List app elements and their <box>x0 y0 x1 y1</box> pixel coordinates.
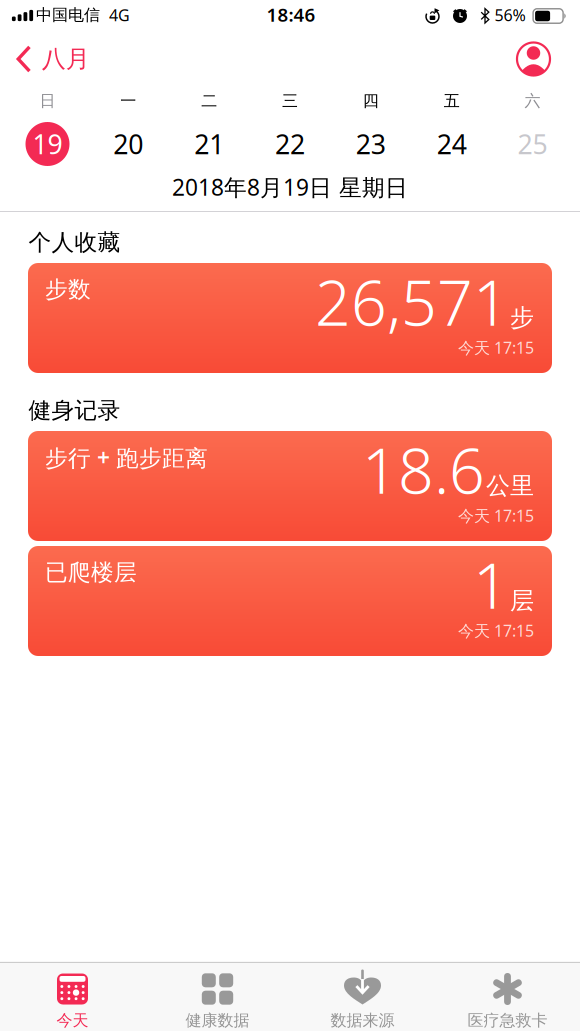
staticText: 24 <box>437 126 467 162</box>
button[interactable]: 五 <box>411 79 492 179</box>
staticText: 18:46 <box>266 2 315 27</box>
button[interactable]: 返回八月 <box>16 44 90 74</box>
button[interactable]: 六 <box>492 79 573 179</box>
staticText: 今天 17:15 <box>458 620 534 641</box>
staticText: 公里 <box>486 471 534 501</box>
button[interactable]: 个人资料 <box>517 42 550 75</box>
button[interactable]: 四 <box>330 79 411 179</box>
button[interactable]: 今天 <box>0 962 145 1031</box>
button[interactable]: 三 <box>249 79 330 179</box>
button[interactable]: 二 <box>169 79 250 179</box>
staticText: 六 <box>524 91 540 111</box>
staticText: 4G <box>109 4 130 26</box>
staticText: 医疗急救卡 <box>467 1011 547 1030</box>
staticText: 个人收藏 <box>28 229 120 256</box>
staticText: 步数 <box>45 276 91 303</box>
staticText: 健康数据 <box>185 1011 249 1030</box>
staticText: 二 <box>201 91 217 111</box>
staticText: 八月 <box>42 44 90 74</box>
staticText: 26,571 <box>315 260 509 343</box>
staticText: 22 <box>275 126 305 162</box>
staticText: 21 <box>194 126 224 162</box>
staticText: 日 <box>39 91 55 111</box>
staticText: 五 <box>444 91 460 111</box>
button[interactable]: 已爬楼层 <box>28 546 552 656</box>
staticText: 20 <box>113 126 143 162</box>
staticText: 56% <box>494 4 525 26</box>
button[interactable]: 健康数据 <box>145 962 290 1031</box>
staticText: 18.6 <box>362 428 485 511</box>
staticText: 25 <box>517 126 547 162</box>
staticText: 三 <box>282 91 298 111</box>
button[interactable]: 医疗急救卡 <box>435 962 580 1031</box>
staticText: 今天 17:15 <box>458 505 534 526</box>
staticText: 数据来源 <box>330 1011 394 1030</box>
staticText: 健身记录 <box>28 397 120 424</box>
staticText: 步行 + 跑步距离 <box>45 442 208 472</box>
staticText: 四 <box>363 91 379 111</box>
staticText: 1 <box>473 543 509 626</box>
staticText: 一 <box>120 91 136 111</box>
staticText: 步 <box>510 303 534 333</box>
staticText: 19 <box>32 126 62 162</box>
button[interactable]: 步行 + 跑步距离 <box>28 431 552 541</box>
button[interactable]: 日 <box>7 79 88 179</box>
button[interactable]: 步数 <box>28 263 552 373</box>
staticText: 今天 17:15 <box>458 337 534 358</box>
staticText: 今天 <box>56 1011 88 1030</box>
button[interactable]: 数据来源 <box>290 962 435 1031</box>
staticText: 2018年8月19日 星期日 <box>172 172 408 202</box>
staticText: 层 <box>510 586 534 616</box>
staticText: 23 <box>356 126 386 162</box>
button[interactable]: 一 <box>88 79 169 179</box>
staticText: 中国电信 <box>36 5 100 25</box>
staticText: 已爬楼层 <box>45 559 137 586</box>
